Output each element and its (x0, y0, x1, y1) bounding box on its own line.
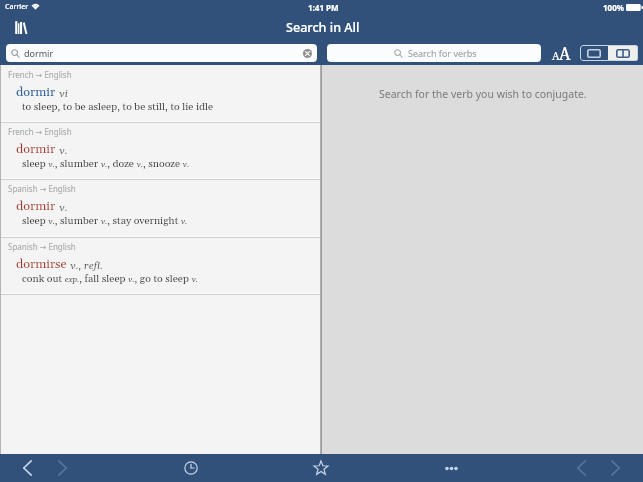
staticText: A (559, 44, 571, 64)
button[interactable]: French → English (0, 65, 321, 122)
button[interactable]: Search for verbs (327, 44, 541, 62)
button[interactable]: Previous entry (567, 454, 595, 482)
button[interactable]: Spanish → English (0, 179, 321, 236)
staticText: conk out exp., fall sleep v., go to slee… (22, 272, 198, 285)
staticText: Search for the verb you wish to conjugat… (379, 87, 587, 101)
button[interactable]: Single pane view (580, 45, 608, 61)
staticText: dormir (16, 198, 56, 214)
staticText: Spanish → English (8, 241, 76, 252)
button[interactable]: Split pane view (608, 45, 638, 61)
button[interactable]: Spanish → English (0, 237, 321, 294)
staticText: v. (59, 201, 68, 214)
button[interactable]: Clear search (301, 47, 314, 60)
staticText: dormirse (16, 256, 67, 272)
button[interactable]: Next entry (601, 454, 629, 482)
staticText: dormir (16, 141, 56, 157)
staticText: French → English (8, 126, 72, 137)
button[interactable]: Text size (549, 42, 574, 62)
staticText: 1:41 PM (308, 2, 339, 13)
staticText: Spanish → English (8, 183, 76, 194)
staticText: v. (59, 144, 68, 157)
button[interactable]: More (437, 454, 465, 482)
button[interactable]: French → English (0, 122, 321, 179)
staticText: vi (59, 87, 68, 100)
button[interactable]: Back (13, 454, 41, 482)
button[interactable]: Forward (48, 454, 76, 482)
button[interactable]: Library (8, 15, 32, 37)
staticText: sleep v., slumber v., stay overnight v. (22, 214, 188, 227)
button[interactable]: Favorites (307, 454, 335, 482)
staticText: A (552, 50, 560, 64)
staticText: sleep v., slumber v., doze v., snooze v. (22, 157, 190, 170)
staticText: v., refl. (70, 259, 103, 272)
staticText: 100% (603, 2, 624, 13)
staticText: to sleep, to be asleep, to be still, to … (22, 100, 214, 113)
staticText: dormir (16, 84, 56, 100)
staticText: Search for verbs (408, 47, 477, 59)
button[interactable]: dormir (6, 44, 317, 62)
staticText: dormir (24, 47, 54, 59)
staticText: French → English (8, 69, 72, 80)
staticText: Carrier (5, 2, 29, 12)
button[interactable]: Recent (177, 454, 205, 482)
staticText: Search in All (286, 19, 360, 36)
